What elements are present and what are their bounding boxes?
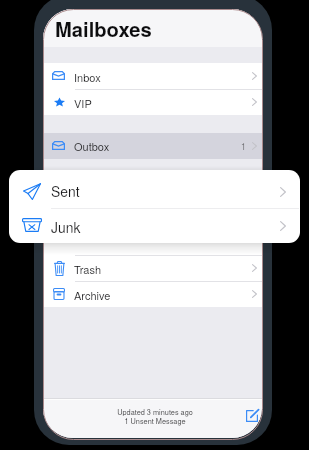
button[interactable] bbox=[43, 133, 262, 159]
staticText: VIP bbox=[74, 95, 92, 111]
button[interactable] bbox=[9, 208, 300, 244]
staticText: Outbox bbox=[74, 138, 110, 154]
button[interactable] bbox=[43, 255, 262, 281]
button[interactable]: Compose bbox=[239, 403, 262, 429]
button[interactable] bbox=[9, 170, 300, 208]
staticText: 1 Unsent Message bbox=[124, 416, 186, 426]
staticText: Sent bbox=[51, 181, 80, 201]
staticText: Junk bbox=[51, 217, 81, 237]
staticText: 1 bbox=[241, 140, 246, 153]
staticText: Updated 3 minutes ago bbox=[117, 407, 193, 417]
button[interactable] bbox=[43, 281, 262, 307]
staticText: Inbox bbox=[74, 69, 101, 85]
button[interactable] bbox=[43, 63, 262, 90]
staticText: Trash bbox=[74, 261, 102, 277]
staticText: Archive bbox=[74, 287, 111, 303]
staticText: Mailboxes bbox=[55, 14, 152, 42]
button[interactable] bbox=[43, 89, 262, 115]
